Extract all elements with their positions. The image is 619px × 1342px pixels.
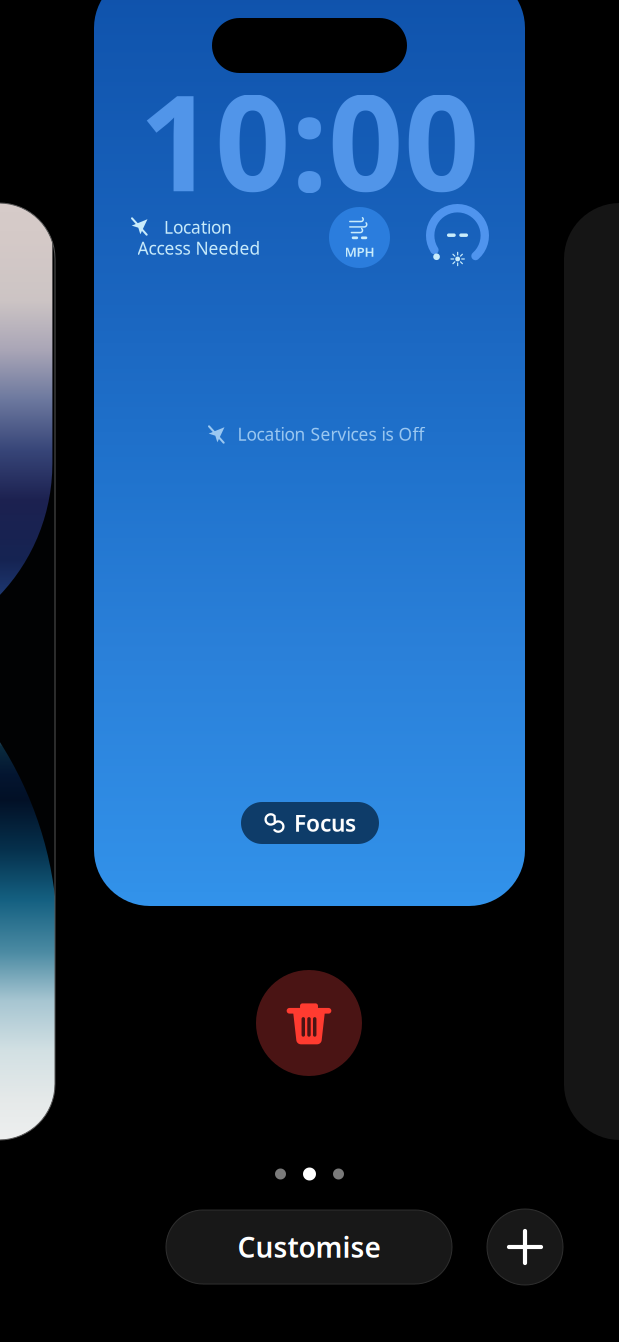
button[interactable]: Add new wallpaper [487, 1209, 563, 1285]
staticText: MPH [344, 243, 374, 260]
staticText: Customise [237, 1228, 380, 1266]
staticText: Location Services is Off [237, 422, 424, 445]
button[interactable]: Delete wallpaper [256, 970, 362, 1076]
staticText: Location [164, 215, 232, 238]
staticText: Focus [294, 808, 356, 838]
staticText: Mon 4 [279, 50, 339, 76]
staticText: Access Needed [137, 236, 260, 259]
staticText: 10:00 [139, 52, 480, 228]
button[interactable]: Focus [241, 802, 379, 844]
button[interactable]: Customise [166, 1210, 452, 1284]
